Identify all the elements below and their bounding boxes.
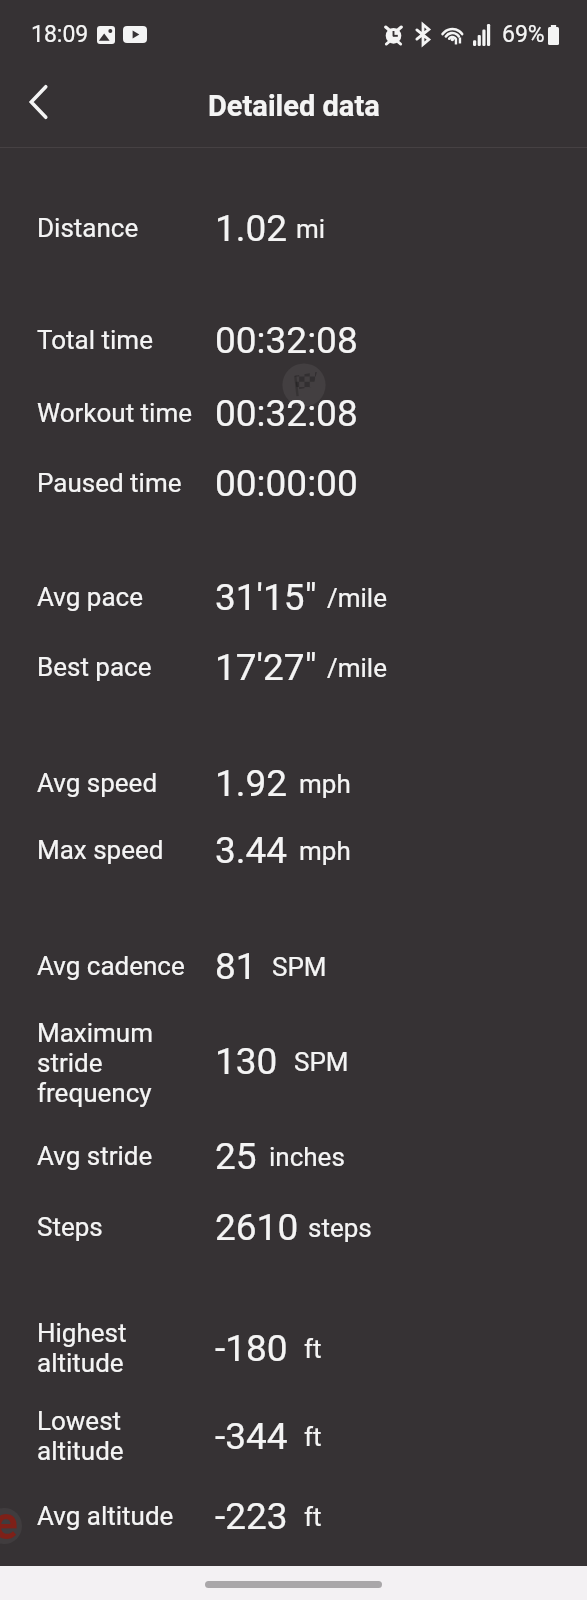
staticText: Workout time [37, 398, 209, 428]
button[interactable]: Back [13, 77, 63, 127]
button[interactable]: Paused time [0, 452, 587, 520]
staticText: mi [296, 214, 326, 244]
staticText: ft [304, 1334, 322, 1364]
staticText: 31'15" [215, 576, 317, 619]
staticText: mph [299, 836, 351, 866]
staticText: 81 [215, 945, 257, 988]
staticText: Paused time [37, 468, 209, 498]
staticText: inches [269, 1142, 345, 1172]
staticText: 00:00:00 [215, 462, 358, 505]
button[interactable]: Lowest altitude [0, 1396, 587, 1476]
staticText: ft [304, 1422, 322, 1452]
staticText: 00:32:08 [215, 392, 358, 435]
staticText: 3.44 [215, 829, 288, 872]
staticText: Total time [37, 325, 209, 355]
staticText: Lowest altitude [37, 1406, 209, 1466]
staticText: Avg cadence [37, 951, 209, 981]
staticText: Avg stride [37, 1141, 209, 1171]
button[interactable]: Workout time [0, 382, 587, 450]
staticText: e [0, 1496, 18, 1550]
staticText: Maximum stride frequency [37, 1018, 209, 1108]
button[interactable]: Avg stride [0, 1125, 587, 1193]
button[interactable]: Total time [0, 309, 587, 377]
button[interactable]: Distance [0, 197, 587, 265]
staticText: 00:32:08 [215, 319, 358, 362]
staticText: mph [299, 769, 351, 799]
button[interactable]: Highest altitude [0, 1308, 587, 1388]
staticText: Highest altitude [37, 1318, 209, 1378]
staticText: SPM [272, 952, 327, 982]
button[interactable]: Avg pace [0, 566, 587, 634]
staticText: -180 [215, 1327, 288, 1370]
staticText: 18:09 [31, 21, 89, 48]
staticText: 2610 [215, 1206, 299, 1249]
staticText: steps [308, 1213, 372, 1243]
button[interactable]: Avg cadence [0, 935, 587, 1003]
button[interactable]: Max speed [0, 819, 587, 887]
staticText: 17'27" [215, 646, 317, 689]
staticText: -223 [215, 1495, 288, 1538]
staticText: 69% [502, 21, 545, 48]
button[interactable]: Steps [0, 1196, 587, 1264]
staticText: /mile [327, 583, 387, 613]
staticText: Avg speed [37, 768, 209, 798]
staticText: 1.92 [215, 762, 288, 805]
button[interactable]: Avg altitude [0, 1485, 587, 1553]
staticText: -344 [215, 1415, 288, 1458]
staticText: Best pace [37, 652, 209, 682]
staticText: SPM [294, 1047, 349, 1077]
staticText: Detailed data [208, 89, 380, 123]
button[interactable]: Best pace [0, 636, 587, 704]
staticText: ft [304, 1502, 322, 1532]
button[interactable]: Avg speed [0, 752, 587, 820]
staticText: Max speed [37, 835, 209, 865]
staticText: 25 [215, 1135, 257, 1178]
staticText: 1.02 [215, 207, 288, 250]
staticText: /mile [327, 653, 387, 683]
staticText: 130 [215, 1040, 278, 1083]
staticText: Steps [37, 1212, 209, 1242]
staticText: Distance [37, 213, 209, 243]
staticText: Avg altitude [37, 1501, 209, 1531]
button[interactable]: Maximum stride frequency [0, 1008, 587, 1118]
staticText: Avg pace [37, 582, 209, 612]
